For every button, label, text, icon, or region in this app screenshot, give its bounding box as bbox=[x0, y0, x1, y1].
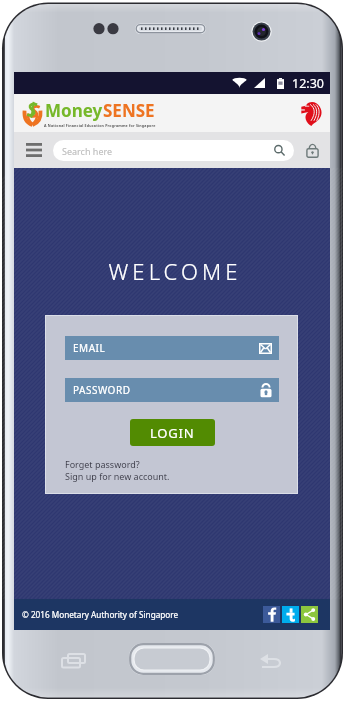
button[interactable]: Search here bbox=[53, 140, 294, 161]
staticText: Search here bbox=[62, 145, 113, 157]
staticText: EMAIL bbox=[73, 341, 106, 355]
staticText: WELCOME bbox=[20, 256, 330, 286]
button[interactable]: Secure login bbox=[306, 139, 319, 161]
staticText: A National Financial Education Programme… bbox=[44, 123, 156, 128]
other: Singapore Government bbox=[300, 100, 322, 126]
button[interactable]: LOGIN bbox=[130, 419, 215, 446]
button[interactable]: Facebook bbox=[263, 606, 280, 623]
staticText: Money bbox=[45, 99, 103, 122]
button[interactable]: EMAIL bbox=[65, 336, 279, 360]
staticText: SENSE bbox=[103, 99, 155, 122]
button[interactable]: Menu bbox=[26, 139, 42, 161]
button[interactable]: Share bbox=[301, 606, 318, 623]
button[interactable]: Twitter bbox=[282, 606, 299, 623]
staticText: © 2016 Monetary Authority of Singapore bbox=[22, 609, 179, 620]
button[interactable]: Forget password? bbox=[65, 458, 140, 470]
staticText: PASSWORD bbox=[73, 383, 131, 397]
staticText: LOGIN bbox=[150, 424, 195, 442]
button[interactable]: PASSWORD bbox=[65, 378, 279, 402]
staticText: 12:30 bbox=[292, 75, 324, 92]
button[interactable]: Sign up for new account. bbox=[65, 470, 170, 482]
